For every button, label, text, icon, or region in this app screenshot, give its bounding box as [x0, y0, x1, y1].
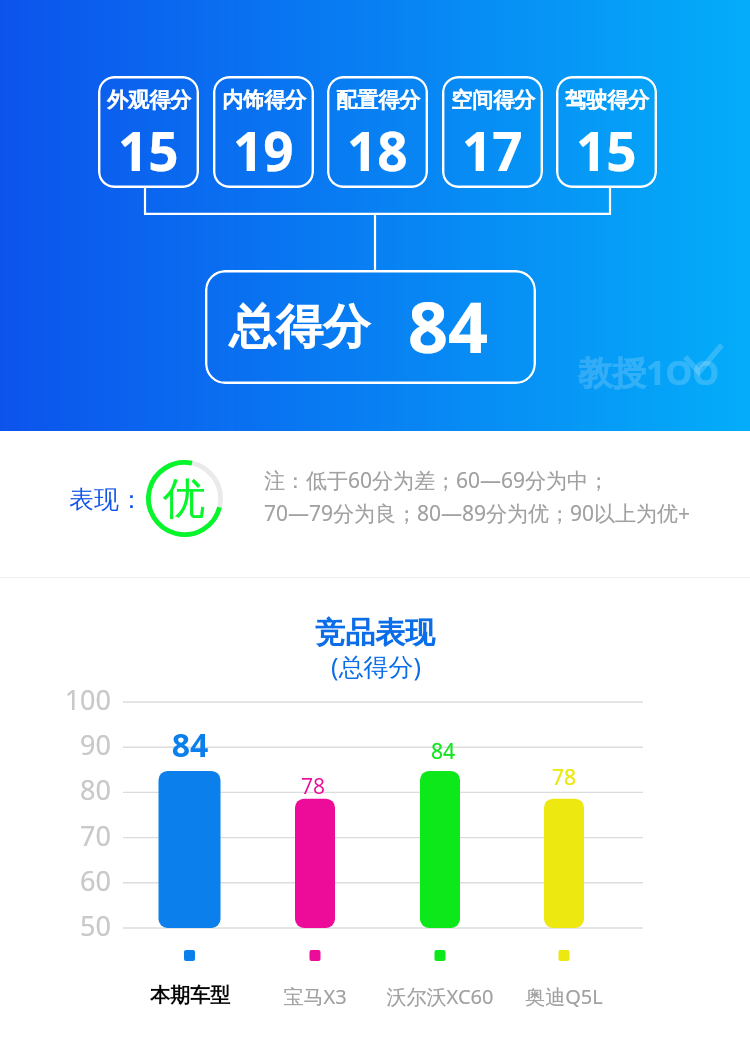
staticText: 15 — [576, 114, 637, 186]
staticText: 宝马X3 — [225, 983, 405, 1010]
staticText: 内饰得分 — [222, 87, 306, 113]
staticText: 84 — [140, 723, 240, 767]
staticText: 奥迪Q5L — [474, 983, 654, 1010]
staticText: 外观得分 — [107, 87, 191, 113]
staticText: 78 — [514, 763, 614, 792]
staticText: 竞品表现 — [315, 614, 435, 652]
staticText: 100 — [51, 681, 111, 718]
staticText: 84 — [393, 737, 493, 766]
button[interactable]: 空间得分 — [442, 76, 543, 188]
staticText: 70 — [51, 817, 111, 854]
staticText: 注：低于60分为差；60—69分为中； — [264, 466, 610, 495]
staticText: (总得分) — [331, 649, 422, 683]
staticText: 17 — [462, 114, 523, 186]
button[interactable]: 外观得分 — [98, 76, 199, 188]
staticText: 84 — [408, 278, 489, 373]
staticText: 90 — [51, 726, 111, 763]
staticText: 60 — [51, 862, 111, 899]
button[interactable]: 驾驶得分 — [556, 76, 657, 188]
staticText: 80 — [51, 771, 111, 808]
staticText: 78 — [263, 772, 363, 801]
staticText: 70—79分为良；80—89分为优；90以上为优+ — [264, 499, 691, 528]
staticText: 驾驶得分 — [565, 87, 649, 113]
staticText: 表现： — [69, 484, 144, 515]
staticText: 教授1OO — [578, 349, 720, 395]
button[interactable]: 内饰得分 — [213, 76, 314, 188]
staticText: 15 — [118, 114, 179, 186]
staticText: 本期车型 — [100, 983, 280, 1008]
staticText: 配置得分 — [336, 87, 420, 113]
staticText: 总得分 — [229, 298, 370, 357]
staticText: 50 — [51, 907, 111, 944]
staticText: 优 — [163, 472, 206, 526]
staticText: 18 — [347, 114, 408, 186]
staticText: 沃尔沃XC60 — [350, 983, 530, 1010]
staticText: 空间得分 — [451, 87, 535, 113]
staticText: 19 — [233, 114, 294, 186]
button[interactable]: 配置得分 — [327, 76, 428, 188]
button[interactable]: 总得分 — [205, 270, 536, 384]
